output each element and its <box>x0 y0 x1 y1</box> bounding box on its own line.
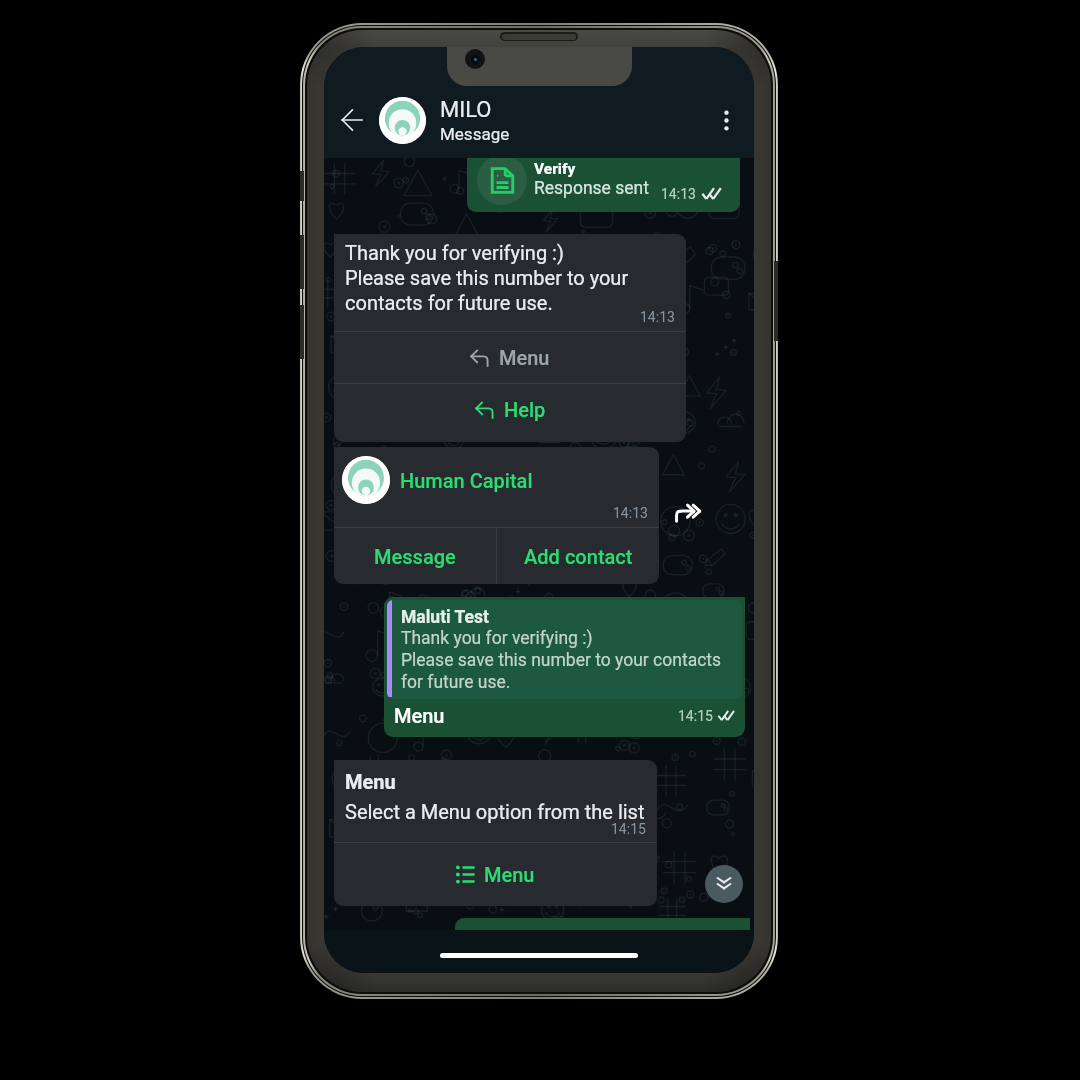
staticText: Menu <box>499 346 550 369</box>
button[interactable]: Help <box>334 384 686 435</box>
staticText: Menu <box>484 863 535 886</box>
button[interactable]: Verify <box>467 151 740 212</box>
button[interactable]: Back <box>332 100 372 140</box>
staticText: Message <box>440 124 510 144</box>
staticText: 14:15 <box>678 708 713 724</box>
staticText: Response sent <box>534 178 649 199</box>
staticText: Maluti Test <box>401 607 489 628</box>
button[interactable]: Message <box>334 528 496 584</box>
staticText: 14:13 <box>613 505 648 521</box>
staticText: MILO <box>440 97 492 123</box>
button[interactable]: Forward <box>674 499 702 527</box>
staticText: 14:13 <box>661 186 696 202</box>
button[interactable]: Menu <box>334 332 686 383</box>
staticText: Message <box>374 545 456 568</box>
button[interactable]: More options <box>706 100 746 140</box>
staticText: Thank you for verifying :) Please save t… <box>345 241 629 315</box>
staticText: 14:15 <box>611 821 646 837</box>
staticText: Select a Menu option from the list <box>345 800 645 823</box>
staticText: Menu <box>394 704 445 727</box>
staticText: 14:13 <box>640 309 675 325</box>
staticText: Help <box>504 398 546 421</box>
button[interactable]: Scroll to bottom <box>705 865 743 903</box>
staticText: Human Capital <box>400 469 533 492</box>
button[interactable]: Add contact <box>497 528 659 584</box>
staticText: Thank you for verifying :) Please save t… <box>401 628 722 693</box>
staticText: Add contact <box>524 545 633 568</box>
button[interactable]: Menu <box>334 843 657 906</box>
staticText: Verify <box>534 160 576 178</box>
staticText: Menu <box>345 770 396 793</box>
